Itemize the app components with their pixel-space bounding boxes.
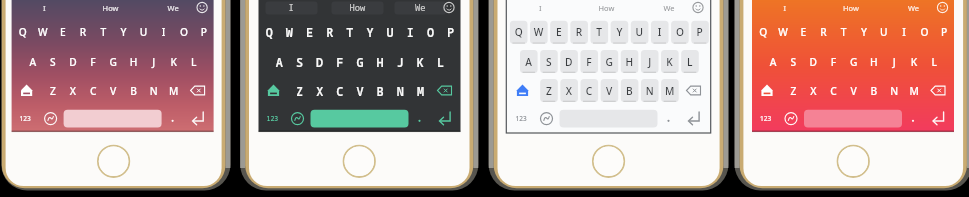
button[interactable]: [804, 110, 902, 128]
button[interactable]: [12, 0, 214, 132]
button[interactable]: [752, 0, 954, 132]
button[interactable]: [311, 110, 409, 128]
button[interactable]: [259, 0, 461, 132]
button[interactable]: [508, 0, 710, 132]
button[interactable]: [64, 110, 162, 128]
